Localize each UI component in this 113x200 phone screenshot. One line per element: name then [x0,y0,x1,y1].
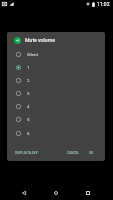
staticText: 1 [27,65,30,70]
staticText: CANCEL [67,151,80,155]
button[interactable]: OK [87,149,96,157]
button[interactable]: 5 [7,113,105,126]
staticText: DISPLAY SLEEP [15,151,38,155]
button[interactable]: Back [13,182,35,200]
button[interactable]: Silent [7,48,105,61]
button[interactable]: Recent apps [77,182,99,200]
staticText: Mute volume [25,37,55,43]
staticText: 4 [27,104,30,109]
staticText: Silent [27,52,38,57]
button[interactable]: DISPLAY SLEEP [13,149,40,157]
staticText: OK [89,151,94,155]
button[interactable]: 1 [7,61,105,74]
button[interactable]: 2 [7,74,105,87]
staticText: 5 [27,117,30,122]
button[interactable]: 4 [7,100,105,113]
button[interactable]: Home [45,182,67,200]
staticText: 11:02 [97,1,110,7]
button[interactable]: 6 [7,127,105,140]
staticText: 6 [27,131,30,136]
staticText: 2 [27,78,30,83]
button[interactable]: 3 [7,87,105,100]
button[interactable]: CANCEL [65,149,82,157]
staticText: 3 [27,91,30,96]
